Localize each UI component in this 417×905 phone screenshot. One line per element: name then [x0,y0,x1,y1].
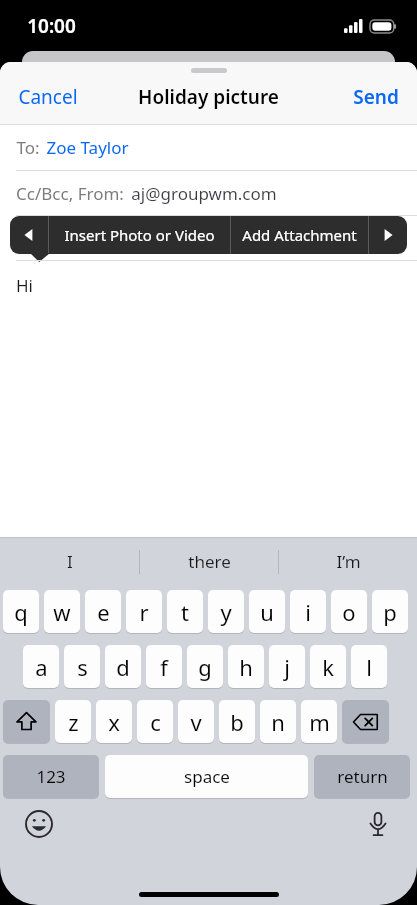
staticText: To: [16,136,40,159]
staticText: s [77,652,88,682]
staticText: o [342,597,356,627]
button[interactable]: y [208,590,244,633]
staticText: l [366,652,372,682]
button[interactable]: n [260,700,296,743]
button[interactable]: Shift [3,700,50,743]
staticText: there [188,550,231,573]
staticText: y [220,597,232,627]
staticText: Hi [16,274,33,297]
button[interactable]: f [146,645,182,688]
staticText: z [68,707,79,737]
button[interactable]: there [140,538,278,585]
staticText: Send [353,84,399,110]
button[interactable]: return [314,755,410,798]
staticText: u [260,597,274,627]
button[interactable]: Hi [0,261,417,537]
button[interactable]: h [228,645,264,688]
button[interactable]: Insert Photo or Video [49,216,230,254]
button[interactable]: t [167,590,203,633]
button[interactable]: z [55,700,91,743]
button[interactable]: b [219,700,255,743]
button[interactable]: Previous [10,216,48,254]
staticText: f [160,652,168,682]
staticText: aj@groupwm.com [131,182,277,205]
button[interactable]: x [96,700,132,743]
staticText: Add Attachment [242,225,357,245]
button[interactable]: I [0,538,139,585]
button[interactable]: Send [343,78,409,116]
staticText: Cc/Bcc, From: [16,182,124,205]
staticText: v [190,707,202,737]
button[interactable]: Dictation [361,807,395,841]
staticText: e [97,597,110,627]
button[interactable]: o [331,590,367,633]
button[interactable]: Next [369,216,407,254]
staticText: space [184,765,230,788]
staticText: h [239,652,253,682]
staticText: j [284,652,290,682]
button[interactable]: v [178,700,214,743]
button[interactable]: c [137,700,173,743]
staticText: c [150,707,161,737]
staticText: n [271,707,285,737]
button[interactable]: Add Attachment [231,216,368,254]
staticText: w [53,597,71,627]
button[interactable]: e [85,590,121,633]
button[interactable]: r [126,590,162,633]
button[interactable]: u [249,590,285,633]
staticText: Cancel [18,84,78,110]
staticText: 10:00 [27,13,76,39]
button[interactable]: l [351,645,387,688]
staticText: 123 [36,765,66,788]
button[interactable]: a [23,645,59,688]
staticText: b [230,707,244,737]
staticText: d [116,652,130,682]
staticText: r [139,597,149,627]
staticText: I’m [336,550,361,573]
button[interactable]: 123 [3,755,99,798]
button[interactable]: Cc/Bcc, From: [0,171,417,215]
staticText: m [309,707,330,737]
staticText: i [305,597,311,627]
staticText: return [337,765,388,788]
staticText: Insert Photo or Video [64,225,215,245]
staticText: k [322,652,334,682]
button[interactable]: Emoji [22,807,56,841]
button[interactable]: d [105,645,141,688]
button[interactable]: space [105,755,308,798]
button[interactable]: m [301,700,337,743]
button[interactable]: k [310,645,346,688]
staticText: I [67,550,73,573]
button[interactable]: p [372,590,408,633]
staticText: Zoe Taylor [46,136,129,159]
button[interactable]: q [3,590,39,633]
staticText: q [14,597,28,627]
staticText: a [35,652,48,682]
staticText: p [383,597,397,627]
button[interactable]: To: [0,125,417,170]
staticText: x [108,707,120,737]
staticText: t [181,597,189,627]
button[interactable]: w [44,590,80,633]
button[interactable]: Cancel [8,78,88,116]
staticText: g [198,652,212,682]
button[interactable]: Delete [342,700,389,743]
button[interactable]: j [269,645,305,688]
button[interactable]: I’m [279,538,417,585]
button[interactable]: g [187,645,223,688]
staticText: Holiday picture [138,84,279,110]
button[interactable]: i [290,590,326,633]
button[interactable]: s [64,645,100,688]
